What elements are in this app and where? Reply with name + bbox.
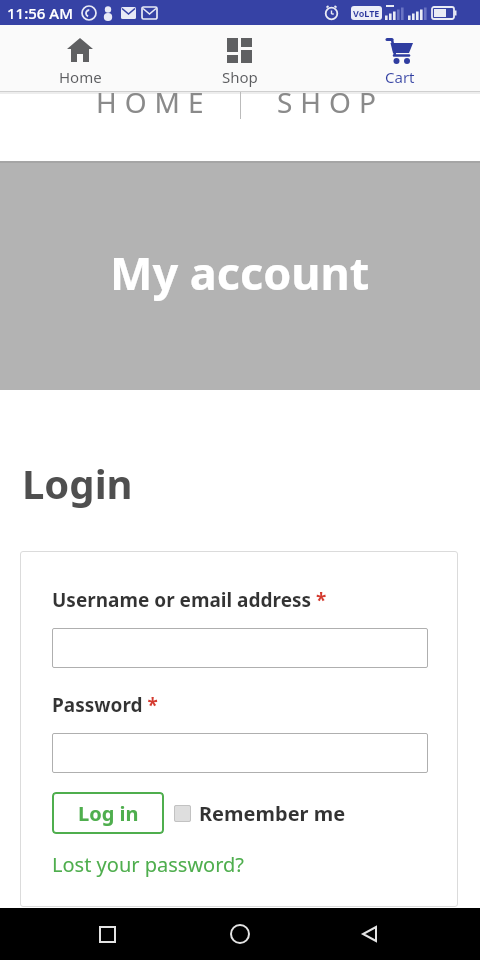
- staticText: Home: [59, 67, 102, 87]
- staticText: HOME: [96, 92, 212, 121]
- staticText: SHOP: [277, 92, 384, 121]
- button[interactable]: Remember me: [174, 800, 346, 827]
- staticText: 11:56 AM: [7, 3, 73, 23]
- staticText: Cart: [385, 67, 415, 87]
- button[interactable]: [346, 908, 394, 960]
- button[interactable]: [216, 908, 264, 960]
- staticText: My account: [110, 242, 370, 303]
- button[interactable]: Home: [0, 25, 160, 91]
- button[interactable]: Shop: [160, 25, 320, 91]
- staticText: Remember me: [199, 800, 346, 827]
- staticText: Login: [22, 456, 133, 510]
- button[interactable]: [52, 733, 428, 773]
- button[interactable]: Lost your password?: [52, 851, 245, 878]
- button[interactable]: Cart: [320, 25, 480, 91]
- button[interactable]: [52, 628, 428, 668]
- staticText: Username or email address *: [52, 587, 327, 613]
- staticText: Password *: [52, 692, 158, 718]
- staticText: Shop: [222, 67, 258, 87]
- button[interactable]: [83, 908, 131, 960]
- button[interactable]: Log in: [52, 792, 164, 834]
- staticText: Log in: [78, 800, 139, 827]
- staticText: VoLTE: [353, 7, 380, 19]
